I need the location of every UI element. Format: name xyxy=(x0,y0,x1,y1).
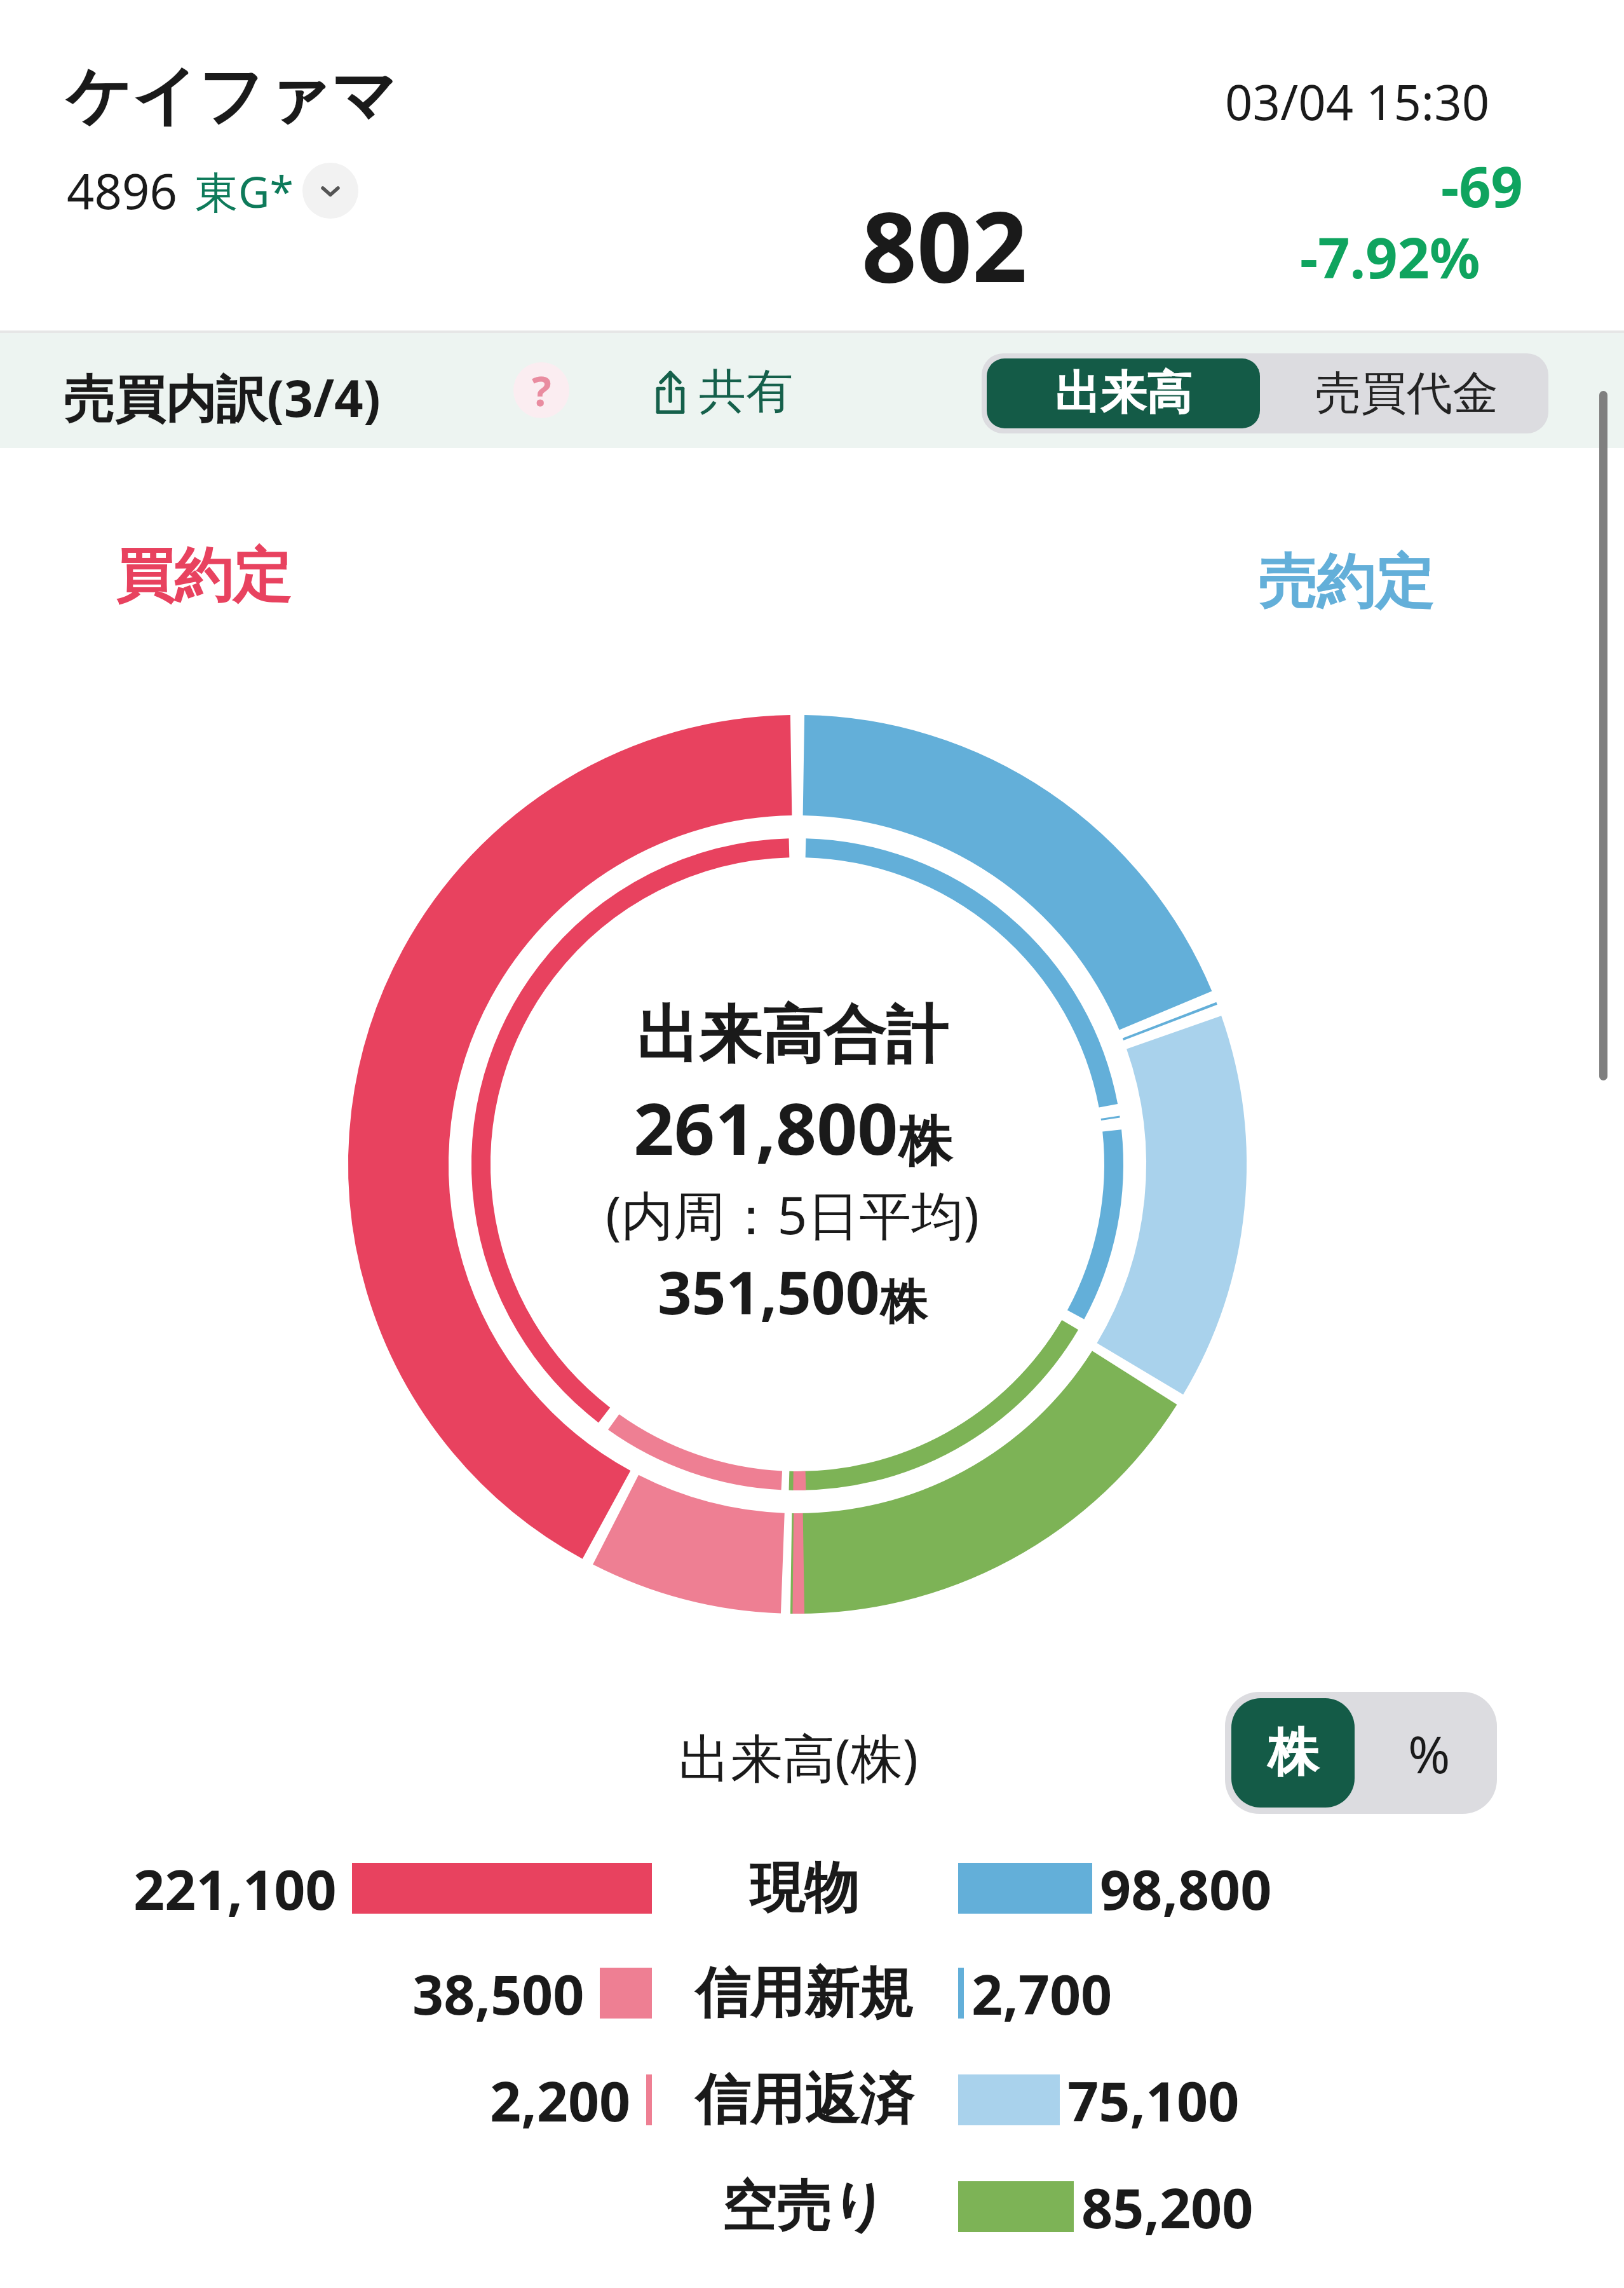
staticText: 98,800 xyxy=(1100,1851,1272,1926)
staticText: 信用返済 xyxy=(695,2066,914,2134)
staticText: 信用新規 xyxy=(695,1959,914,2027)
staticText: 株 xyxy=(898,1108,952,1176)
staticText: 2,200 xyxy=(490,2063,631,2137)
button[interactable]: Help xyxy=(513,362,569,418)
staticText: -7.92% xyxy=(1300,219,1480,295)
staticText: 出来高合計 xyxy=(637,997,948,1075)
staticText: 売買内訳(3/4) xyxy=(64,362,381,432)
button[interactable]: Show stock details xyxy=(302,163,358,219)
staticText: 出来高 xyxy=(1055,365,1192,423)
staticText: 221,100 xyxy=(133,1851,337,1926)
staticText: 85,200 xyxy=(1081,2170,1254,2244)
staticText: -69 xyxy=(1441,147,1523,224)
staticText: 株 xyxy=(1268,1721,1318,1785)
button[interactable]: 信用新規 xyxy=(0,1945,1624,2041)
staticText: 261,800 xyxy=(633,1079,898,1176)
staticText: 売買代金 xyxy=(1315,365,1498,423)
staticText: % xyxy=(1408,1719,1451,1788)
staticText: 買約定 xyxy=(116,539,291,613)
staticText: 空売り xyxy=(722,2172,888,2241)
staticText: 2,700 xyxy=(971,1956,1113,2031)
staticText: 75,100 xyxy=(1067,2063,1240,2137)
staticText: 03/04 15:30 xyxy=(1225,69,1490,135)
button[interactable]: 売買代金 xyxy=(1265,353,1548,433)
staticText: 売約定 xyxy=(1258,545,1433,619)
button[interactable]: 信用返済 xyxy=(0,2052,1624,2148)
staticText: 4896 xyxy=(67,158,177,224)
staticText: 株 xyxy=(880,1273,927,1332)
staticText: (内周：5日平均) xyxy=(606,1178,980,1250)
staticText: ケイファマ xyxy=(65,56,397,137)
staticText: 351,500 xyxy=(658,1251,880,1332)
staticText: 現物 xyxy=(750,1854,859,1923)
button[interactable]: 空売り xyxy=(0,2158,1624,2255)
staticText: 802 xyxy=(862,179,1027,311)
button[interactable]: 出来高 xyxy=(987,358,1260,428)
staticText: 38,500 xyxy=(412,1956,585,2031)
button[interactable]: 共有 xyxy=(642,358,797,425)
staticText: 共有 xyxy=(699,362,793,421)
staticText: ? xyxy=(532,363,551,418)
staticText: 東G* xyxy=(195,161,294,221)
button[interactable]: % xyxy=(1361,1692,1497,1814)
button[interactable]: 株 xyxy=(1231,1698,1355,1808)
button[interactable]: 現物 xyxy=(0,1840,1624,1937)
staticText: 出来高(株) xyxy=(679,1721,919,1792)
